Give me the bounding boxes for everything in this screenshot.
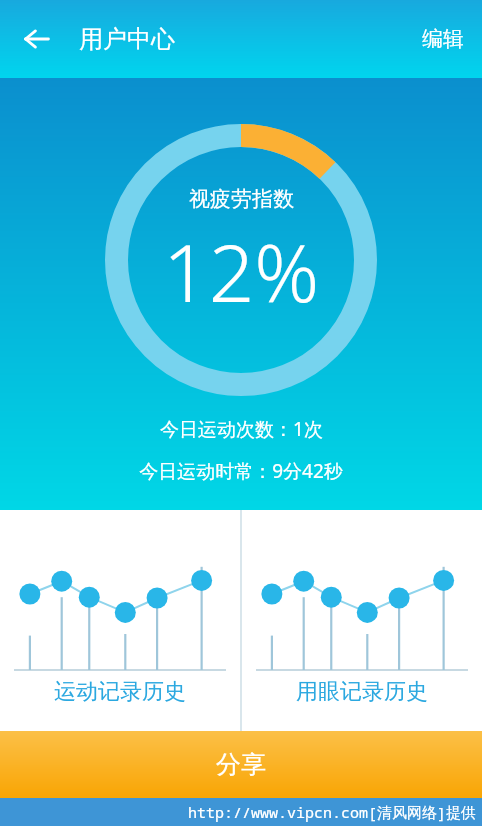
staticText: 视疲劳指数 bbox=[189, 186, 294, 212]
staticText: http://www.vipcn.com[清风网络]提供 bbox=[188, 802, 477, 822]
staticText: 今日运动次数：1次 bbox=[160, 416, 323, 442]
button[interactable]: 分享 bbox=[0, 731, 482, 798]
button[interactable]: 运动记录历史 bbox=[0, 510, 240, 731]
button[interactable]: Back bbox=[14, 16, 60, 62]
button[interactable]: 用眼记录历史 bbox=[242, 510, 482, 731]
staticText: 用眼记录历史 bbox=[296, 678, 428, 706]
staticText: 运动记录历史 bbox=[54, 678, 186, 706]
button[interactable]: 编辑 bbox=[404, 12, 482, 66]
staticText: 用户中心 bbox=[79, 24, 175, 54]
staticText: 今日运动时常：9分42秒 bbox=[139, 458, 343, 484]
staticText: 编辑 bbox=[422, 26, 464, 52]
staticText: 分享 bbox=[216, 749, 266, 780]
staticText: 12% bbox=[163, 216, 320, 325]
